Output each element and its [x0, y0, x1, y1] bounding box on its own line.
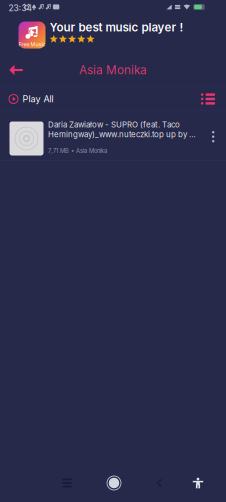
- staticText: Your best music player !: [49, 20, 183, 34]
- button[interactable]: Play All: [0, 87, 63, 111]
- button[interactable]: Daria Zawiałow - SUPRO (feat. Taco Hemin…: [0, 111, 226, 161]
- staticText: 7,71 MB • Asia Monika: [48, 147, 107, 154]
- button[interactable]: Sort order: [0, 87, 26, 111]
- button[interactable]: Back: [0, 54, 28, 82]
- staticText: 23:34: [8, 3, 32, 13]
- staticText: Play All: [22, 93, 53, 104]
- staticText: Daria Zawiałow - SUPRO (feat. Taco Hemin…: [48, 120, 196, 139]
- staticText: Free Music: [18, 41, 45, 48]
- staticText: Asia Monika: [79, 63, 147, 77]
- button[interactable]: Free Music: [0, 16, 226, 54]
